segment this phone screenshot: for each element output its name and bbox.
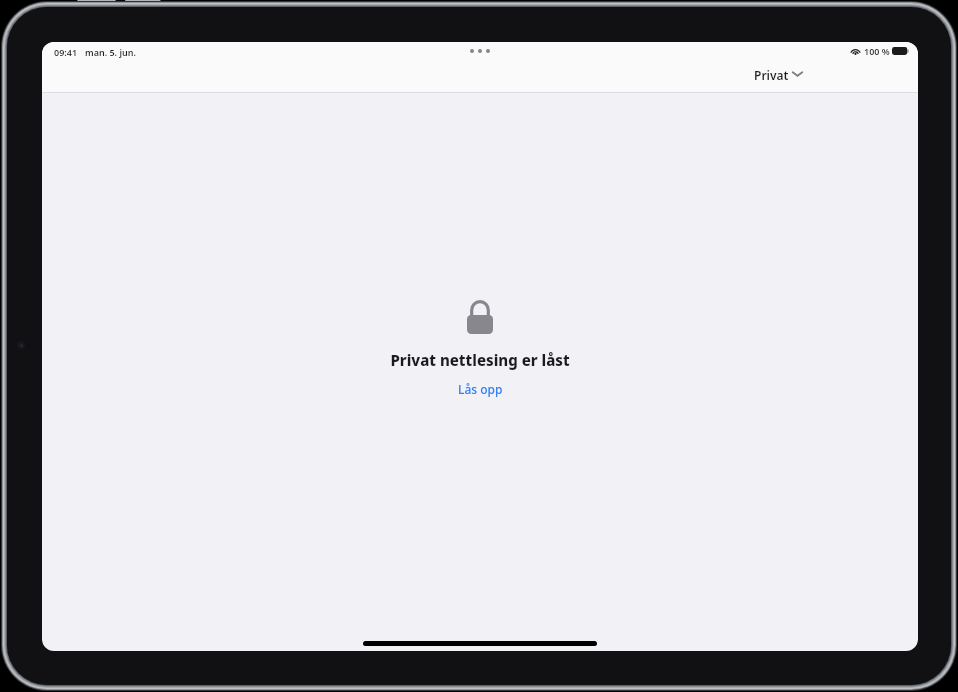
button[interactable]: Multitasking controls	[460, 45, 500, 57]
staticText: 100 %	[864, 45, 890, 57]
button[interactable]: Privat	[748, 63, 810, 87]
staticText: 09:41	[54, 46, 78, 58]
staticText: Privat	[754, 67, 789, 83]
staticText: Privat nettlesing er låst	[390, 350, 570, 370]
staticText: man. 5. jun.	[85, 46, 136, 58]
staticText: Lås opp	[458, 381, 503, 397]
button[interactable]: Lås opp	[448, 378, 513, 400]
